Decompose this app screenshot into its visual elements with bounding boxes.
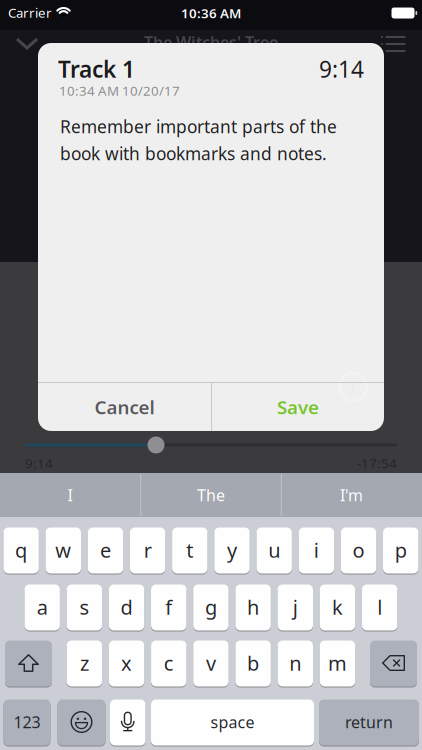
button[interactable]: 123 [3, 699, 50, 746]
staticText: p [395, 537, 407, 563]
button[interactable]: space [151, 699, 314, 746]
staticText: I'm [340, 484, 363, 506]
button[interactable]: The [141, 473, 281, 517]
staticText: x [121, 650, 132, 676]
button[interactable]: q [3, 527, 39, 574]
button[interactable]: j [278, 584, 313, 631]
staticText: space [210, 711, 254, 733]
button[interactable]: Shift [5, 640, 52, 687]
staticText: Cancel [94, 395, 154, 419]
staticText: a [37, 594, 48, 620]
staticText: e [100, 537, 111, 563]
button[interactable]: r [130, 527, 165, 574]
staticText: q [15, 537, 27, 563]
staticText: w [55, 537, 71, 563]
button[interactable]: Track list [381, 36, 406, 52]
button[interactable]: s [67, 584, 102, 631]
staticText: k [332, 594, 343, 620]
staticText: z [80, 650, 89, 676]
button[interactable]: Dismiss player [13, 36, 41, 52]
button[interactable]: v [193, 640, 229, 687]
staticText: i [350, 376, 355, 398]
staticText: d [121, 594, 133, 620]
staticText: j [293, 594, 298, 620]
button[interactable]: y [214, 527, 250, 574]
staticText: h [247, 594, 259, 620]
staticText: n [289, 650, 301, 676]
staticText: i [314, 537, 319, 563]
button[interactable]: w [46, 527, 81, 574]
button[interactable]: i [299, 527, 334, 574]
staticText: Remember important parts of the [60, 115, 337, 138]
button[interactable]: Dictate [110, 699, 145, 746]
staticText: 9:14 [25, 454, 53, 472]
staticText: o [352, 537, 364, 563]
staticText: u [268, 537, 280, 563]
staticText: 9:14 [319, 54, 364, 84]
staticText: 123 [13, 711, 40, 733]
button[interactable]: b [235, 640, 271, 687]
staticText: book with bookmarks and notes. [60, 142, 327, 165]
button[interactable]: x [109, 640, 144, 687]
staticText: return [345, 711, 393, 733]
staticText: t [186, 537, 193, 563]
button[interactable]: Emoji [57, 699, 105, 746]
button[interactable]: p [383, 527, 418, 574]
button[interactable]: z [67, 640, 102, 687]
button[interactable]: k [320, 584, 355, 631]
staticText: I [67, 484, 72, 506]
staticText: b [247, 650, 259, 676]
button[interactable]: g [193, 584, 229, 631]
button[interactable]: u [256, 527, 292, 574]
button[interactable]: n [278, 640, 313, 687]
staticText: c [164, 650, 174, 676]
staticText: v [206, 650, 216, 676]
button[interactable]: f [151, 584, 186, 631]
button[interactable]: l [362, 584, 397, 631]
button[interactable]: d [109, 584, 144, 631]
staticText: Carrier [8, 4, 52, 21]
button[interactable]: a [24, 584, 60, 631]
staticText: f [165, 594, 172, 620]
button[interactable]: Cancel [38, 383, 211, 431]
staticText: Track 1 [58, 54, 135, 84]
staticText: m [328, 650, 347, 676]
button[interactable]: Delete [370, 640, 417, 687]
button[interactable]: m [320, 640, 355, 687]
button[interactable]: I [0, 473, 140, 517]
staticText: y [227, 537, 237, 563]
staticText: l [377, 594, 382, 620]
staticText: The Witches' Tree [144, 31, 278, 53]
staticText: 10:34 AM 10/20/17 [59, 82, 180, 99]
button[interactable]: c [151, 640, 186, 687]
button[interactable]: I'm [281, 473, 421, 517]
staticText: Save [277, 395, 319, 419]
button[interactable]: Save [212, 383, 384, 431]
staticText: -17:54 [357, 454, 397, 472]
staticText: The [197, 484, 225, 506]
button[interactable]: t [172, 527, 207, 574]
staticText: r [144, 537, 152, 563]
staticText: g [205, 594, 217, 620]
button[interactable]: return [319, 699, 419, 746]
button[interactable]: h [235, 584, 271, 631]
staticText: s [79, 594, 89, 620]
staticText: 10:36 AM [181, 4, 241, 22]
button[interactable]: o [341, 527, 376, 574]
button[interactable]: e [88, 527, 123, 574]
